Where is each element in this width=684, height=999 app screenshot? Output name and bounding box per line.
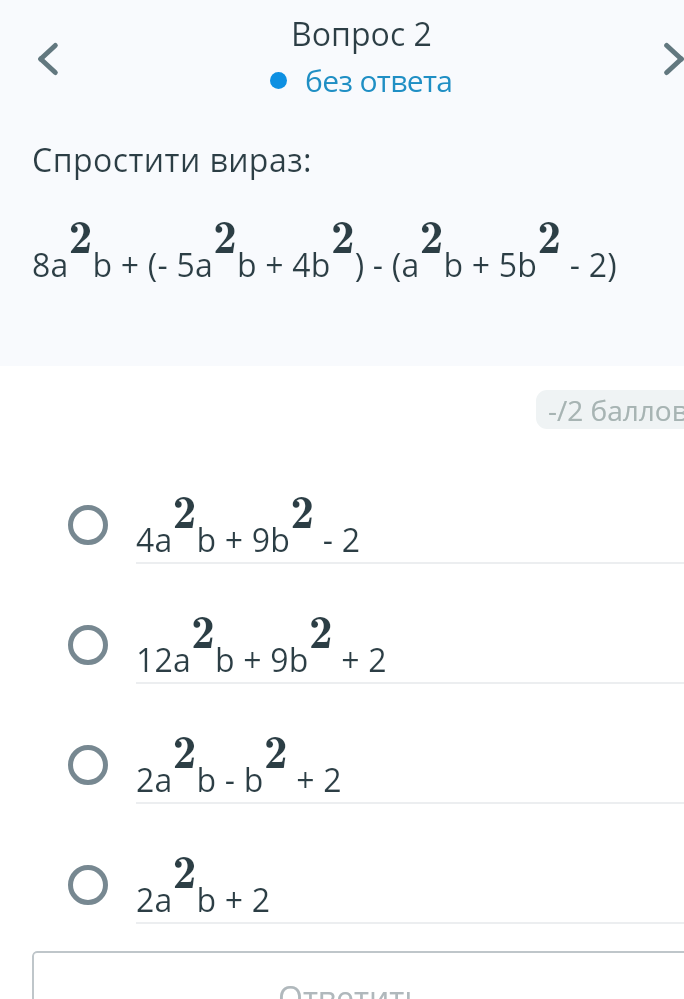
staticText: 2a2b + 2 bbox=[136, 833, 271, 921]
button[interactable]: Ответить bbox=[32, 951, 684, 999]
staticText: -/2 баллов bbox=[548, 391, 684, 429]
button[interactable]: 4a2b + 9b2 - 2 bbox=[0, 470, 684, 580]
staticText: без ответа bbox=[305, 60, 453, 101]
button[interactable]: 2a2b + 2 bbox=[0, 830, 684, 940]
staticText: 4a2b + 9b2 - 2 bbox=[136, 473, 361, 561]
staticText: 2a2b - b2 + 2 bbox=[136, 713, 342, 801]
staticText: Спростити вираз: bbox=[32, 138, 313, 182]
staticText: Ответить bbox=[278, 976, 424, 999]
staticText: 8a2b + (- 5a2b + 4b2) - (a2b + 5b2 - 2) bbox=[32, 198, 617, 286]
button[interactable]: 12a2b + 9b2 + 2 bbox=[0, 590, 684, 700]
button[interactable]: Previous question bbox=[16, 27, 80, 91]
button[interactable]: 2a2b - b2 + 2 bbox=[0, 710, 684, 820]
staticText: Вопрос 2 bbox=[291, 12, 432, 56]
staticText: 12a2b + 9b2 + 2 bbox=[136, 593, 387, 681]
button[interactable]: Next question bbox=[642, 27, 684, 91]
